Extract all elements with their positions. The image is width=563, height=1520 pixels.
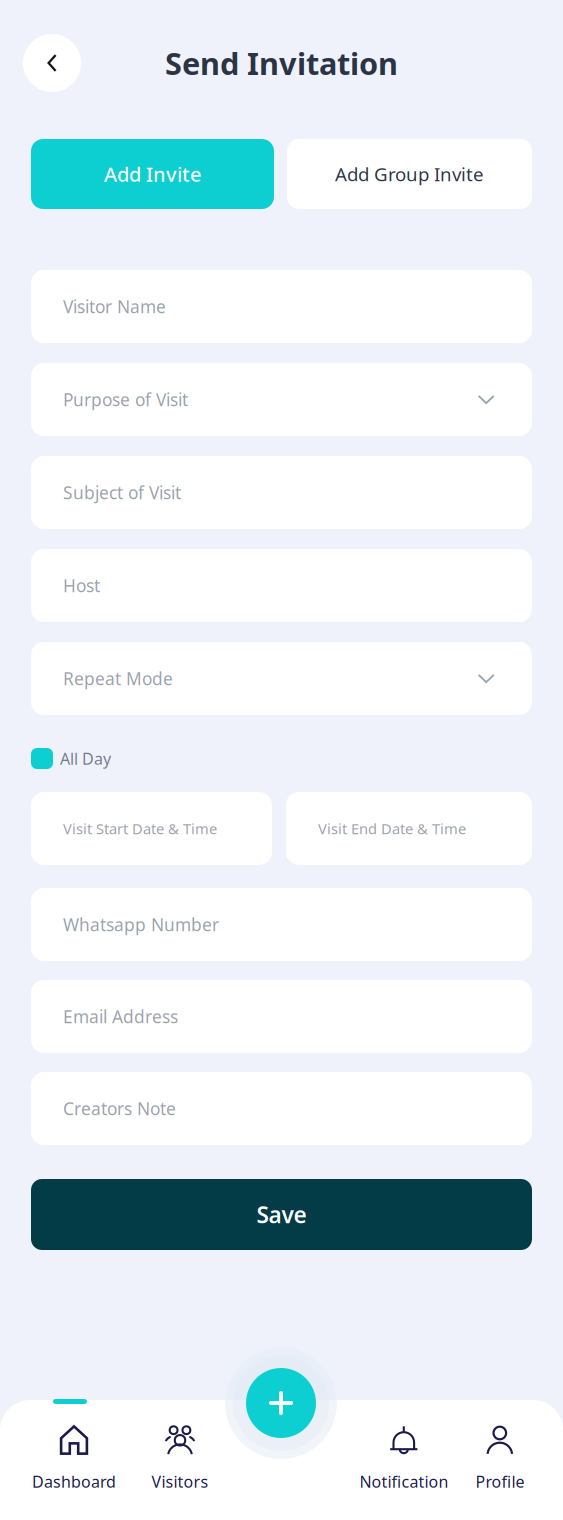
button[interactable]: Back xyxy=(23,34,81,92)
staticText: Purpose of Visit xyxy=(63,388,188,411)
button[interactable]: Email Address xyxy=(31,980,532,1053)
staticText: Send Invitation xyxy=(165,43,398,83)
staticText: Visitors xyxy=(151,1471,208,1492)
staticText: Subject of Visit xyxy=(63,481,181,504)
button[interactable]: Add Group Invite xyxy=(287,139,532,209)
staticText: Email Address xyxy=(63,1005,178,1028)
staticText: Visit Start Date & Time xyxy=(63,819,217,838)
button[interactable]: Creators Note xyxy=(31,1072,532,1145)
button[interactable]: Visitor Name xyxy=(31,270,532,343)
button[interactable]: Notification xyxy=(344,1425,464,1492)
staticText: Save xyxy=(256,1199,306,1229)
staticText: Visitor Name xyxy=(63,295,166,318)
button[interactable]: Visit Start Date & Time xyxy=(31,792,272,865)
button[interactable]: Subject of Visit xyxy=(31,456,532,529)
staticText: Dashboard xyxy=(32,1471,116,1492)
button[interactable]: Repeat Mode xyxy=(31,642,532,715)
button[interactable]: Profile xyxy=(440,1425,560,1492)
button[interactable]: Dashboard xyxy=(14,1425,134,1492)
staticText: Whatsapp Number xyxy=(63,913,219,936)
button[interactable]: Visit End Date & Time xyxy=(286,792,532,865)
staticText: Repeat Mode xyxy=(63,667,173,690)
button[interactable]: Host xyxy=(31,549,532,622)
staticText: Add Group Invite xyxy=(335,162,484,186)
staticText: Notification xyxy=(359,1471,448,1492)
button[interactable]: Purpose of Visit xyxy=(31,363,532,436)
button[interactable]: Save xyxy=(31,1179,532,1250)
staticText: All Day xyxy=(60,748,111,769)
staticText: Host xyxy=(63,574,100,597)
button[interactable]: Add xyxy=(246,1368,316,1438)
button[interactable]: Add Invite xyxy=(31,139,274,209)
staticText: Add Invite xyxy=(104,161,201,187)
staticText: Creators Note xyxy=(63,1097,176,1120)
button[interactable]: All Day xyxy=(31,748,53,769)
staticText: Visit End Date & Time xyxy=(318,819,466,838)
staticText: Profile xyxy=(475,1471,524,1492)
button[interactable]: Visitors xyxy=(120,1425,240,1492)
button[interactable]: Whatsapp Number xyxy=(31,888,532,961)
